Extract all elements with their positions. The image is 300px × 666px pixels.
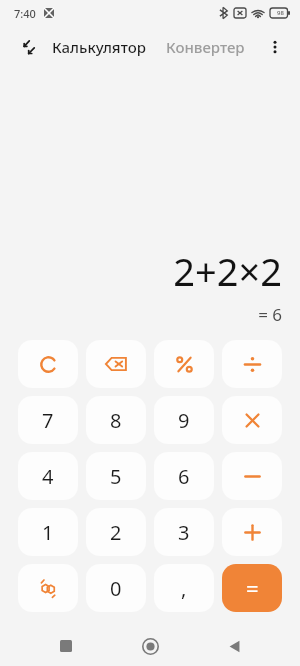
staticText: 4 [42,463,54,490]
button[interactable]: 8 [86,396,146,444]
button[interactable]: Minus [222,452,282,500]
button[interactable]: 3 [154,508,214,556]
staticText: = 6 [258,303,282,326]
staticText: , [181,575,187,602]
button[interactable]: Percent [154,340,214,388]
staticText: 8 [110,407,122,434]
staticText: Конвертер [166,37,245,57]
button[interactable]: Scientific functions [18,564,78,612]
button[interactable]: 5 [86,452,146,500]
button[interactable]: Конвертер [162,31,249,63]
button[interactable]: Equals [222,564,282,612]
button[interactable]: 2 [86,508,146,556]
button[interactable]: 0 [86,564,146,612]
staticText: = [246,573,259,603]
button[interactable]: 7 [18,396,78,444]
staticText: 2+2×2 [173,245,282,297]
button[interactable]: 4 [18,452,78,500]
button[interactable]: Backspace [86,340,146,388]
staticText: 9 [178,407,190,434]
button[interactable]: Divide [222,340,282,388]
button[interactable]: 6 [154,452,214,500]
button[interactable]: Collapse [10,30,44,64]
staticText: 1 [42,519,54,546]
staticText: 7:40 [14,6,36,21]
staticText: 7 [42,407,54,434]
button[interactable]: Калькулятор [48,31,150,63]
staticText: Калькулятор [52,37,146,57]
staticText: 2 [110,519,122,546]
button[interactable]: 1 [18,508,78,556]
button[interactable]: Clear [18,340,78,388]
staticText: 5 [110,463,122,490]
button[interactable]: Home [108,626,192,666]
staticText: 0 [110,575,122,602]
button[interactable]: Plus [222,508,282,556]
button[interactable]: Recent apps [24,626,108,666]
button[interactable]: 9 [154,396,214,444]
button[interactable]: More options [260,32,290,62]
button[interactable]: Back [192,626,276,666]
staticText: 6 [178,463,190,490]
button[interactable]: , [154,564,214,612]
button[interactable]: Multiply [222,396,282,444]
staticText: 98 [277,9,284,17]
staticText: 3 [178,519,190,546]
